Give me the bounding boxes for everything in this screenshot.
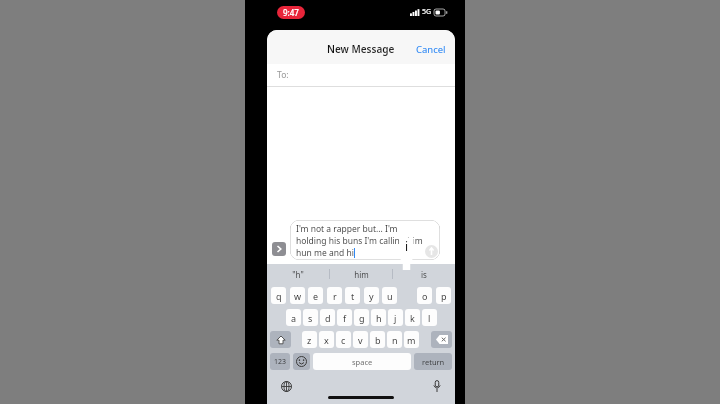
button[interactable]: v	[353, 331, 368, 348]
button[interactable]: space	[313, 353, 411, 370]
button[interactable]: b	[370, 331, 385, 348]
button[interactable]: k	[405, 309, 420, 326]
staticText: "h"	[292, 269, 304, 280]
staticText: y	[369, 290, 374, 302]
button[interactable]: Shift	[270, 331, 291, 348]
staticText: 9:47	[283, 7, 299, 18]
button[interactable]: j	[388, 309, 403, 326]
staticText: g	[359, 312, 365, 324]
staticText: q	[276, 290, 282, 302]
button[interactable]: him	[330, 264, 392, 284]
button[interactable]: c	[336, 331, 351, 348]
button[interactable]: m	[404, 331, 419, 348]
staticText: n	[392, 334, 398, 346]
button[interactable]: y	[364, 287, 379, 304]
button[interactable]: Show apps	[272, 242, 286, 256]
staticText: e	[313, 290, 319, 302]
staticText: p	[441, 290, 447, 302]
staticText: o	[422, 290, 428, 302]
staticText: 5G	[422, 7, 432, 17]
button[interactable]: I'm not a rapper but... I'm	[290, 220, 440, 260]
staticText: k	[410, 312, 415, 324]
button[interactable]: s	[303, 309, 318, 326]
button[interactable]: Change keyboard	[281, 381, 292, 392]
staticText: j	[394, 312, 397, 324]
staticText: space	[352, 357, 373, 367]
button[interactable]: Send	[425, 245, 438, 258]
button[interactable]: q	[271, 287, 286, 304]
staticText: Cancel	[416, 43, 446, 56]
staticText: 123	[274, 357, 287, 367]
staticText: u	[387, 290, 393, 302]
staticText: w	[294, 290, 302, 302]
button[interactable]: u	[382, 287, 397, 304]
button[interactable]: Emoji	[293, 353, 310, 370]
staticText: h	[376, 312, 382, 324]
staticText: z	[307, 334, 312, 346]
button[interactable]: r	[327, 287, 342, 304]
button[interactable]: g	[354, 309, 369, 326]
button[interactable]: p	[436, 287, 451, 304]
staticText: hun me and hi	[296, 247, 354, 259]
button[interactable]: "h"	[267, 264, 329, 284]
staticText: m	[407, 334, 416, 346]
button[interactable]: f	[337, 309, 352, 326]
button[interactable]: t	[345, 287, 360, 304]
button[interactable]: 123	[270, 353, 290, 370]
staticText: v	[358, 334, 363, 346]
staticText: x	[324, 334, 329, 346]
button[interactable]: e	[308, 287, 323, 304]
staticText: d	[325, 312, 331, 324]
staticText: holding his buns I'm calling him	[296, 235, 423, 247]
button[interactable]: Cancel	[407, 39, 455, 60]
staticText: b	[375, 334, 381, 346]
button[interactable]: h	[371, 309, 386, 326]
staticText: t	[351, 290, 355, 302]
button[interactable]: is	[393, 264, 455, 284]
staticText: is	[421, 269, 427, 280]
button[interactable]: Dictate	[433, 380, 441, 392]
staticText: i	[405, 238, 409, 254]
staticText: him	[354, 269, 369, 280]
button[interactable]: return	[414, 353, 452, 370]
button[interactable]: w	[290, 287, 305, 304]
staticText: l	[428, 312, 431, 324]
button[interactable]: o	[417, 287, 432, 304]
button[interactable]: n	[387, 331, 402, 348]
button[interactable]: l	[422, 309, 437, 326]
button[interactable]: Delete	[431, 331, 452, 348]
staticText: New Message	[327, 42, 395, 56]
staticText: return	[422, 357, 445, 367]
staticText: I'm not a rapper but... I'm	[296, 223, 398, 235]
staticText: c	[341, 334, 346, 346]
button[interactable]: z	[302, 331, 317, 348]
staticText: f	[343, 312, 347, 324]
staticText: a	[291, 312, 297, 324]
button[interactable]: d	[320, 309, 335, 326]
button[interactable]: x	[319, 331, 334, 348]
staticText: To:	[277, 69, 289, 81]
button[interactable]: a	[286, 309, 301, 326]
staticText: r	[333, 290, 337, 302]
staticText: s	[308, 312, 313, 324]
